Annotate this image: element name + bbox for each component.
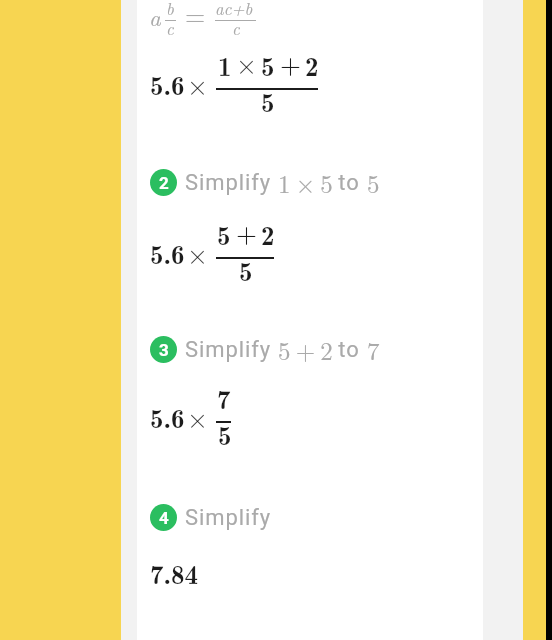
button[interactable]: 2 [150,165,378,200]
staticText: + [280,44,302,82]
staticText: b [166,0,174,20]
staticText: 7 [367,332,378,367]
staticText: 7 [217,378,231,417]
staticText: 5 + 2 [278,332,332,367]
staticText: Simplify [185,505,272,531]
staticText: Simplify [185,170,278,196]
staticText: Simplify [185,337,278,363]
staticText: 4 [159,508,169,528]
staticText: 5 [261,45,275,84]
staticText: to [332,170,367,196]
staticText: + [236,213,258,251]
staticText: × [187,65,209,103]
staticText: a [149,0,161,33]
staticText: 2 [261,214,275,253]
staticText: = [185,0,206,33]
staticText: 2 [159,173,169,193]
button[interactable]: 3 [150,332,378,367]
button[interactable]: 4 [150,504,272,531]
staticText: × [187,234,209,272]
staticText: 5 [218,414,232,453]
staticText: c [166,16,174,40]
staticText: 3 [159,340,169,360]
staticText: × [187,398,209,436]
staticText: 7.84 [150,553,199,592]
staticText: 5 [261,81,275,120]
staticText: 1 [218,45,232,84]
staticText: 5 [217,214,231,253]
staticText: to [332,337,367,363]
staticText: × [236,44,258,82]
staticText: ac+b [215,0,253,20]
staticText: 5.6 [150,64,185,103]
staticText: 1 × 5 [278,165,332,200]
staticText: 2 [305,45,319,84]
staticText: 5.6 [150,233,185,272]
staticText: c [232,16,240,40]
staticText: 5 [239,250,253,289]
staticText: 5.6 [150,397,185,436]
staticText: 5 [367,165,378,200]
